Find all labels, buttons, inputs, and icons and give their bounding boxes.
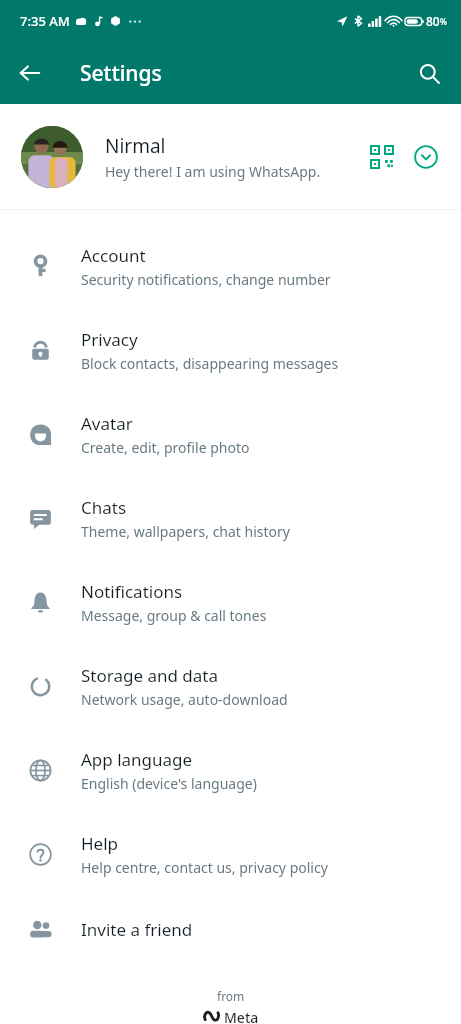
staticText: Security notifications, change number xyxy=(81,270,331,289)
button[interactable]: Search xyxy=(407,51,451,95)
button[interactable]: Back xyxy=(8,51,52,95)
button[interactable]: Chats xyxy=(0,476,461,560)
staticText: Meta xyxy=(224,1008,259,1024)
staticText: Help xyxy=(81,832,119,855)
button[interactable]: QR code xyxy=(363,138,401,176)
staticText: English (device's language) xyxy=(81,774,257,793)
staticText: Notifications xyxy=(81,580,183,603)
button[interactable]: Avatar xyxy=(0,392,461,476)
button[interactable]: Invite a friend xyxy=(0,896,461,962)
staticText: 80 xyxy=(426,13,440,29)
staticText: Settings xyxy=(80,59,162,88)
button[interactable]: Notifications xyxy=(0,560,461,644)
staticText: Block contacts, disappearing messages xyxy=(81,354,339,373)
staticText: Storage and data xyxy=(81,664,219,687)
staticText: App language xyxy=(81,748,193,771)
staticText: Invite a friend xyxy=(81,918,193,941)
staticText: Hey there! I am using WhatsApp. xyxy=(105,162,321,181)
staticText: Message, group & call tones xyxy=(81,606,267,625)
staticText: Account xyxy=(81,244,146,267)
staticText: Avatar xyxy=(81,412,133,435)
button[interactable]: Expand xyxy=(407,138,445,176)
staticText: Nirmal xyxy=(105,133,166,159)
staticText: from xyxy=(217,988,245,1004)
button[interactable]: Privacy xyxy=(0,308,461,392)
button[interactable]: Help xyxy=(0,812,461,896)
staticText: Create, edit, profile photo xyxy=(81,438,250,457)
staticText: Privacy xyxy=(81,328,138,351)
staticText: % xyxy=(440,16,447,27)
staticText: Network usage, auto-download xyxy=(81,690,288,709)
staticText: Help centre, contact us, privacy policy xyxy=(81,858,328,877)
staticText: Theme, wallpapers, chat history xyxy=(81,522,290,541)
button[interactable]: Nirmal xyxy=(0,104,461,209)
button[interactable]: App language xyxy=(0,728,461,812)
staticText: 7:35 AM xyxy=(20,12,70,30)
button[interactable]: Account xyxy=(0,224,461,308)
button[interactable]: Storage and data xyxy=(0,644,461,728)
staticText: Chats xyxy=(81,496,127,519)
